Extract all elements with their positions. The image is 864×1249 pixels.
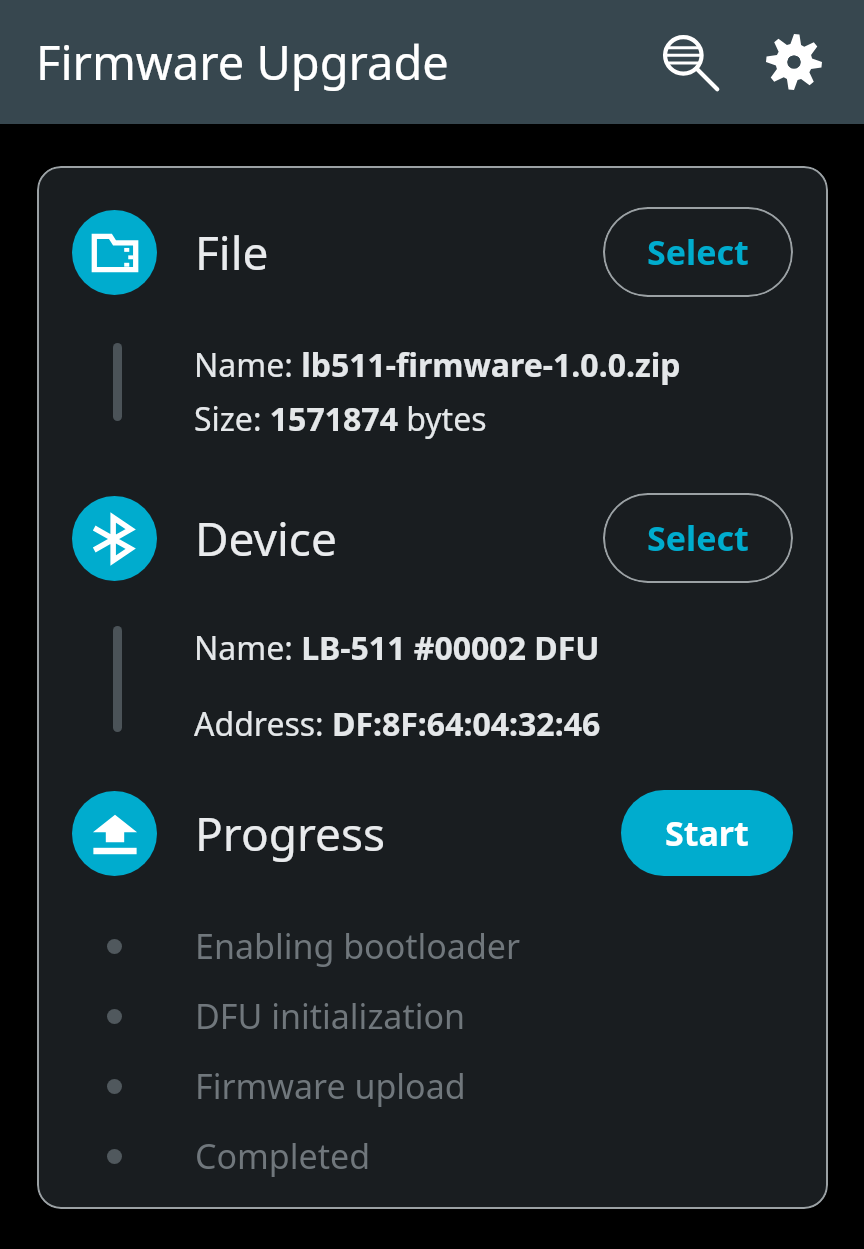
staticText: File bbox=[195, 221, 269, 284]
button[interactable]: Select bbox=[603, 207, 793, 297]
staticText: Firmware Upgrade bbox=[36, 30, 449, 94]
other: File section bbox=[72, 210, 157, 295]
staticText: Progress bbox=[195, 802, 386, 865]
button[interactable]: Start bbox=[621, 790, 793, 876]
staticText: Address: DF:8F:64:04:32:46 bbox=[194, 702, 601, 746]
staticText: Name: lb511-firmware-1.0.0.zip bbox=[194, 343, 681, 387]
other: Progress section bbox=[72, 791, 157, 876]
staticText: DFU initialization bbox=[195, 993, 466, 1039]
staticText: Select bbox=[647, 229, 749, 275]
staticText: Completed bbox=[195, 1133, 371, 1179]
staticText: Name: LB-511 #00002 DFU bbox=[194, 626, 600, 670]
button[interactable]: Scan bbox=[646, 18, 734, 106]
staticText: Start bbox=[665, 810, 749, 856]
other: Device section bbox=[72, 496, 157, 581]
staticText: Device bbox=[195, 507, 337, 570]
button[interactable]: Select bbox=[603, 493, 793, 583]
staticText: Size: 1571874 bytes bbox=[194, 397, 487, 441]
staticText: Select bbox=[647, 515, 749, 561]
staticText: Enabling bootloader bbox=[195, 923, 521, 969]
staticText: Firmware upload bbox=[195, 1063, 466, 1109]
button[interactable]: Settings bbox=[750, 18, 838, 106]
